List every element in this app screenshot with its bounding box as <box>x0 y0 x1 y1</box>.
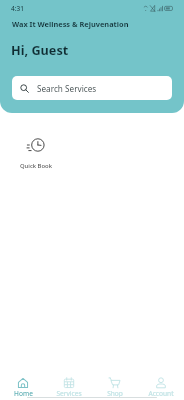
other: Shop <box>109 377 121 389</box>
other: Home <box>17 377 29 389</box>
button[interactable]: Shop <box>92 370 138 398</box>
staticText: Account <box>148 389 174 398</box>
button[interactable]: Services <box>46 370 92 398</box>
staticText: Wax It Wellness & Rejuvenation <box>12 19 129 29</box>
staticText: Search Services <box>37 83 97 94</box>
staticText: Services <box>56 389 82 398</box>
other: Services <box>63 377 75 389</box>
staticText: Home <box>14 389 33 398</box>
button[interactable]: Account <box>138 370 184 398</box>
button[interactable]: Search Services <box>12 76 172 100</box>
other: Quick Book <box>27 136 45 154</box>
staticText: 4:31 <box>11 4 24 13</box>
staticText: Shop <box>107 389 123 398</box>
button[interactable]: Home <box>0 370 46 398</box>
other: Account <box>155 377 167 389</box>
staticText: Hi, Guest <box>11 41 69 58</box>
button[interactable]: Quick Book <box>12 136 59 170</box>
staticText: Quick Book <box>20 162 52 170</box>
